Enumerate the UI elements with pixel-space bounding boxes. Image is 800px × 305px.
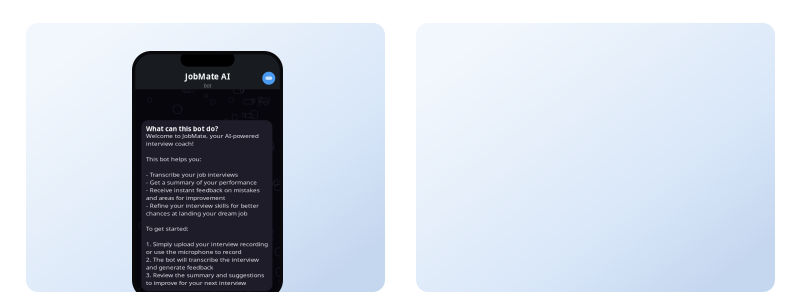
staticText: bot xyxy=(203,82,211,89)
staticText: Welcome to JobMate, your AI-powered inte… xyxy=(146,132,512,305)
button[interactable]: Bot profile xyxy=(262,72,275,85)
staticText: JobMate AI xyxy=(185,71,230,82)
staticText: What can this bot do? xyxy=(146,124,363,151)
